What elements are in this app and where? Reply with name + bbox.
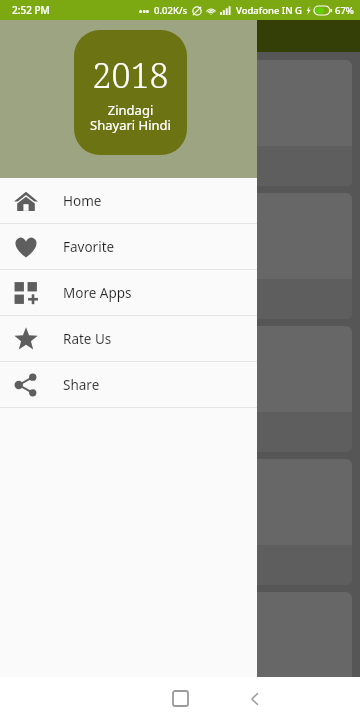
button[interactable]: [8, 193, 352, 319]
staticText: 2018: [92, 52, 169, 98]
button[interactable]: [8, 459, 352, 585]
button[interactable]: More Apps: [0, 270, 257, 315]
button[interactable]: Back: [239, 677, 271, 720]
staticText: 0.02K/s: [154, 4, 188, 17]
staticText: More Apps: [63, 284, 132, 302]
button[interactable]: [8, 326, 352, 452]
button[interactable]: [8, 592, 352, 718]
staticText: Share: [63, 376, 100, 394]
button[interactable]: [8, 60, 352, 186]
staticText: Home: [63, 192, 102, 210]
staticText: Rate Us: [63, 330, 112, 348]
staticText: Vodafone IN G: [236, 4, 302, 17]
button[interactable]: Share: [0, 362, 257, 407]
button[interactable]: Rate Us: [0, 316, 257, 361]
staticText: •••: [139, 5, 150, 17]
staticText: 2:52 PM: [12, 3, 50, 17]
button[interactable]: Home: [0, 178, 257, 223]
staticText: 67%: [335, 4, 354, 17]
staticText: Favorite: [63, 238, 115, 256]
staticText: Zindagi Shayari Hindi: [90, 101, 171, 134]
button[interactable]: Favorite: [0, 224, 257, 269]
button[interactable]: Home: [164, 677, 196, 720]
